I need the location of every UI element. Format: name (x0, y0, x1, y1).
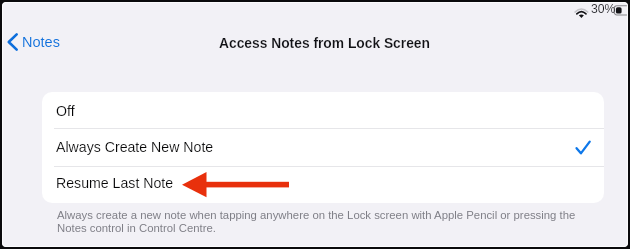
button[interactable]: Off (42, 92, 604, 128)
staticText: Always Create New Note (56, 139, 214, 155)
other: Battery 30% (612, 4, 628, 16)
staticText: 30% (591, 2, 616, 16)
staticText: Notes control in Control Centre. (57, 222, 216, 235)
other: Selected (576, 141, 590, 154)
button[interactable]: Always Create New Note (42, 129, 604, 166)
staticText: Always create a new note when tapping an… (57, 209, 576, 222)
button[interactable]: Back to Notes (2, 28, 65, 56)
staticText: Off (56, 103, 75, 119)
other: Wi-Fi (574, 4, 589, 18)
staticText: Access Notes from Lock Screen (219, 36, 430, 51)
button[interactable]: Resume Last Note (42, 167, 604, 203)
other: Back to Notes (7, 33, 18, 51)
staticText: Resume Last Note (56, 175, 174, 191)
other: Callout arrow pointing to Resume Last No… (174, 162, 298, 204)
staticText: Notes (22, 34, 60, 50)
